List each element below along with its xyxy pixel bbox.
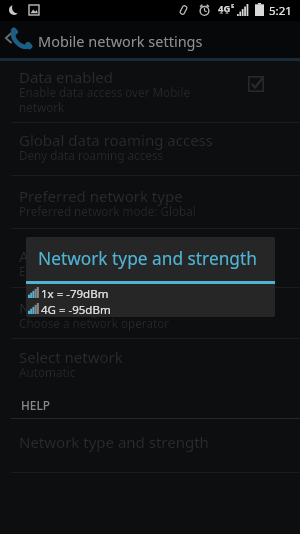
staticText: Deny data roaming access <box>19 147 164 163</box>
staticText: Network type and strength <box>19 432 209 452</box>
staticText: Network operators <box>19 298 153 318</box>
staticText: HELP <box>21 397 50 413</box>
staticText: Preferred network type <box>19 186 183 206</box>
button[interactable]: Preferred network type <box>0 186 300 226</box>
staticText: E <box>231 2 235 10</box>
button[interactable]: Select network <box>0 347 300 387</box>
staticText: Select network <box>19 347 123 367</box>
button[interactable]: Access Point Names <box>0 246 300 286</box>
staticText: 5:21 <box>269 3 292 19</box>
button[interactable]: Network operators <box>0 298 300 338</box>
staticText: Enable data access over Mobile <box>19 84 190 100</box>
staticText: 4G <box>218 2 231 15</box>
staticText: Network type and strength <box>38 247 257 271</box>
button[interactable]: Data enabled <box>0 67 300 122</box>
staticText: Data enabled <box>19 67 114 87</box>
staticText: Global data roaming access <box>19 130 213 150</box>
button[interactable]: Network type and strength <box>0 430 300 466</box>
button[interactable]: Back <box>0 21 300 58</box>
staticText: Choose a network operator <box>19 315 170 331</box>
staticText: network <box>19 99 65 115</box>
staticText: Mobile network settings <box>38 31 203 51</box>
staticText: 4G = -95dBm <box>41 302 111 317</box>
staticText: Enter APN settings <box>19 263 122 279</box>
staticText: Automatic <box>19 364 76 380</box>
staticText: 1x = -79dBm <box>41 286 109 302</box>
staticText: Preferred network mode: Global <box>19 203 196 219</box>
staticText: Access Point Names <box>19 246 160 266</box>
button[interactable]: Global data roaming access <box>0 130 300 170</box>
